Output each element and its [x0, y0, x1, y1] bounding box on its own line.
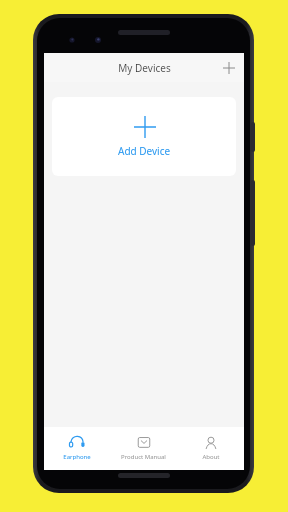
staticText: Product Manual: [121, 453, 166, 461]
button[interactable]: Earphone: [44, 427, 110, 470]
staticText: About: [202, 453, 220, 461]
button[interactable]: About: [177, 427, 244, 470]
button[interactable]: Add device: [218, 57, 240, 79]
button[interactable]: Product Manual: [110, 427, 177, 470]
staticText: Earphone: [63, 453, 91, 461]
button[interactable]: Add Device: [52, 97, 236, 176]
staticText: Add Device: [118, 144, 171, 158]
staticText: My Devices: [118, 61, 171, 75]
